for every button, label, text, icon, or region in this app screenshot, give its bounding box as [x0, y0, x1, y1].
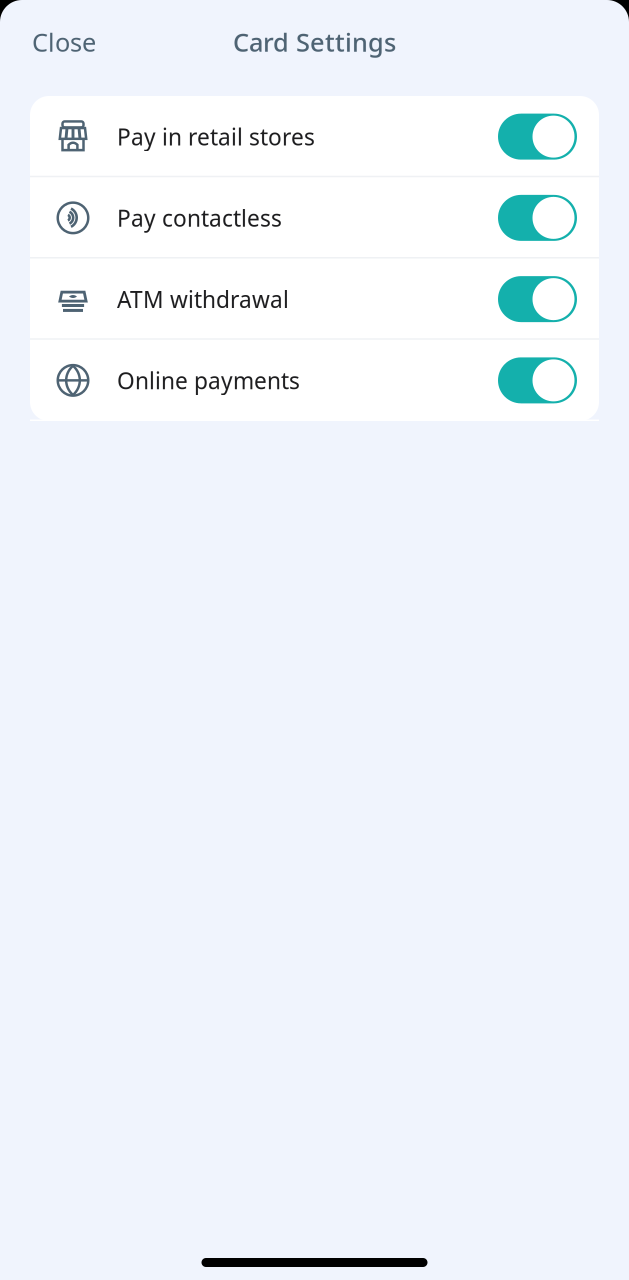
button[interactable]: Pay in retail stores	[30, 96, 599, 177]
staticText: Online payments	[117, 365, 300, 395]
staticText: Pay in retail stores	[117, 122, 315, 152]
button[interactable]: Online payments	[498, 357, 577, 403]
button[interactable]: Online payments	[30, 340, 599, 421]
staticText: Card Settings	[233, 25, 396, 59]
staticText: ATM withdrawal	[117, 284, 289, 314]
button[interactable]: Pay in retail stores	[498, 114, 577, 160]
button[interactable]: ATM withdrawal	[30, 258, 599, 340]
button[interactable]: Pay contactless	[498, 195, 577, 241]
button[interactable]: ATM withdrawal	[498, 276, 577, 322]
staticText: Pay contactless	[117, 203, 282, 233]
staticText: Close	[32, 25, 96, 59]
button[interactable]: Pay contactless	[30, 177, 599, 258]
button[interactable]: Close	[24, 18, 104, 66]
